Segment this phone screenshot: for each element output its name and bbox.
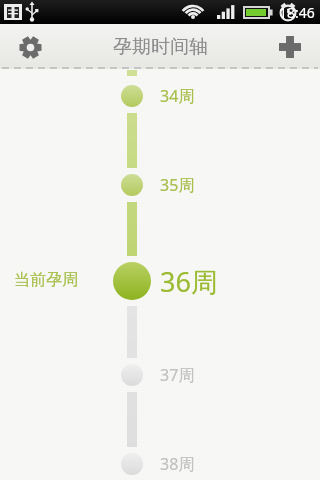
staticText: 35周: [160, 174, 195, 196]
staticText: 36周: [160, 263, 218, 300]
staticText: 18:46: [279, 3, 315, 22]
staticText: 34周: [160, 85, 195, 107]
staticText: 孕期时间轴: [113, 35, 208, 59]
button[interactable]: Add: [268, 25, 312, 69]
button[interactable]: 34周: [160, 83, 230, 109]
button[interactable]: 36周: [160, 262, 230, 300]
staticText: 当前孕周: [14, 270, 78, 290]
staticText: 37周: [160, 364, 195, 386]
button[interactable]: 38周: [160, 451, 230, 477]
button[interactable]: 37周: [160, 362, 230, 388]
button[interactable]: Settings: [8, 25, 52, 69]
button[interactable]: 35周: [160, 172, 230, 198]
staticText: 38周: [160, 453, 195, 475]
